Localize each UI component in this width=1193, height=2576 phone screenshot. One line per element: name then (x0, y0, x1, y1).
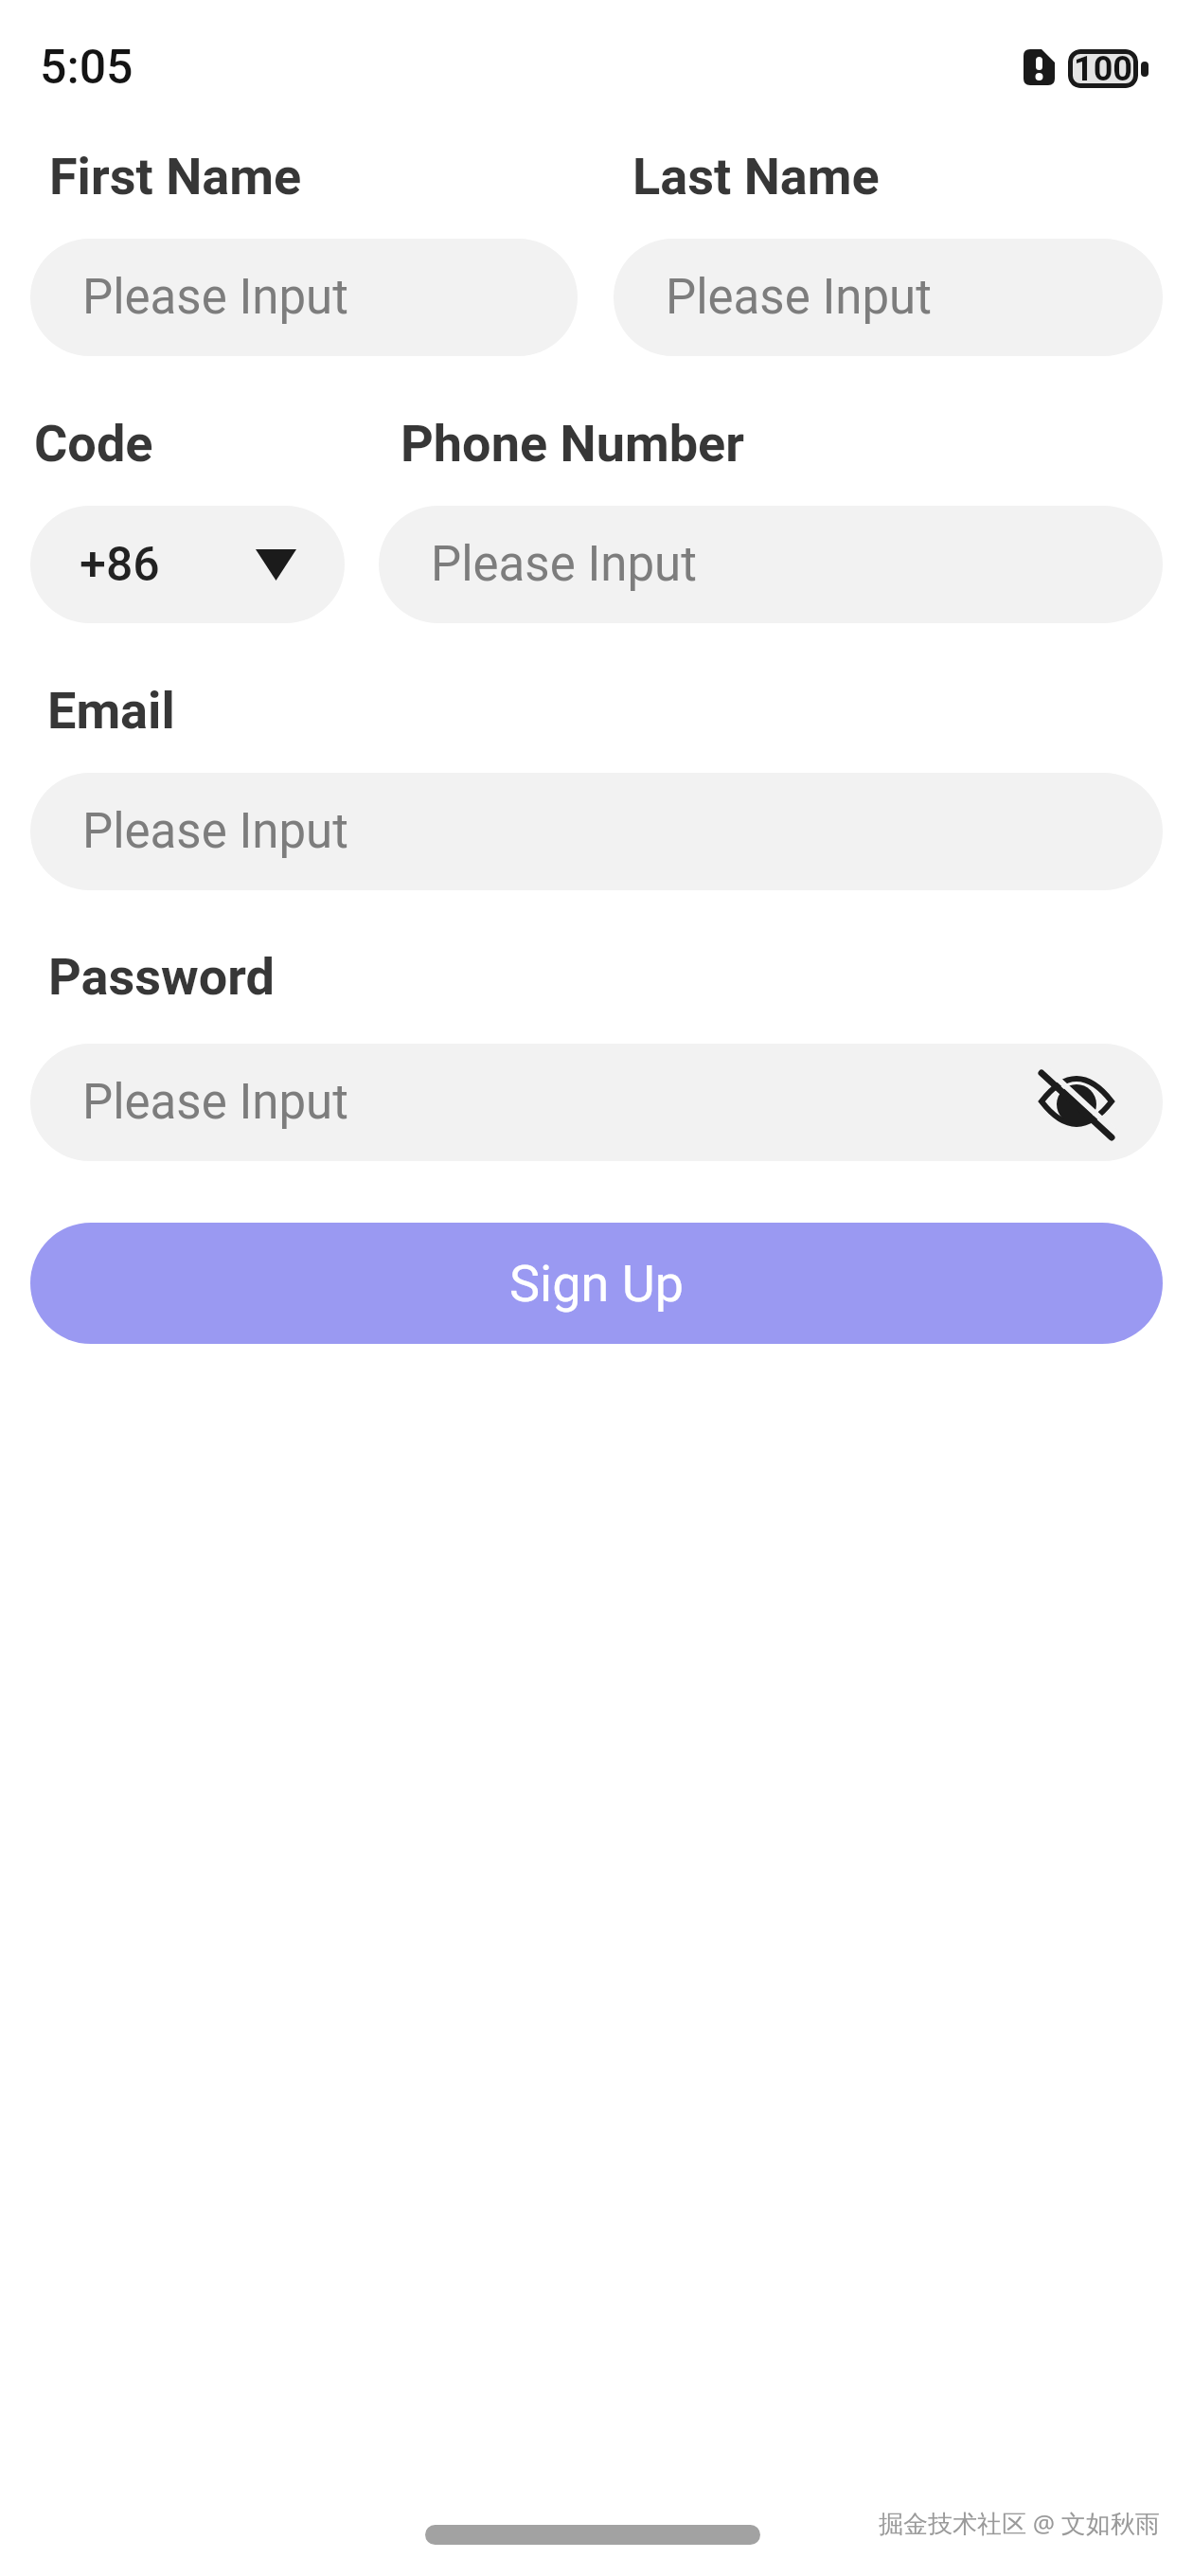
button[interactable]: +86 (30, 506, 345, 623)
button[interactable]: Please Input (30, 773, 1163, 890)
staticText: Phone Number (401, 414, 744, 474)
button[interactable]: Please Input (379, 506, 1163, 623)
button[interactable]: Please Input (30, 239, 578, 356)
staticText: Please Input (666, 269, 932, 326)
staticText: Email (47, 681, 175, 741)
button[interactable]: Please Input (30, 1044, 1163, 1161)
button[interactable]: Sign Up (30, 1223, 1163, 1344)
staticText: 5:05 (40, 40, 134, 96)
staticText: Please Input (82, 269, 348, 326)
staticText: 掘金技术社区 @ 文如秋雨 (879, 2506, 1160, 2540)
staticText: Please Input (82, 1074, 348, 1131)
button[interactable]: Please Input (614, 239, 1163, 356)
staticText: Code (34, 414, 153, 474)
staticText: 100 (1074, 49, 1132, 88)
staticText: Sign Up (509, 1254, 685, 1314)
staticText: +86 (80, 537, 160, 593)
staticText: Please Input (82, 803, 348, 860)
staticText: Password (48, 947, 275, 1007)
staticText: Please Input (431, 536, 697, 593)
staticText: First Name (49, 147, 302, 206)
staticText: Last Name (632, 147, 880, 206)
